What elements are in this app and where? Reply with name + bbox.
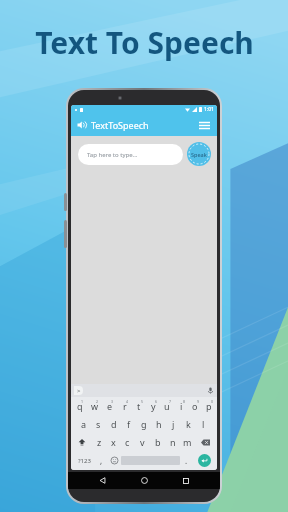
staticText: 2 <box>96 399 99 404</box>
staticText: a <box>81 418 87 430</box>
staticText: . <box>185 455 188 466</box>
button[interactable]: f <box>121 415 136 433</box>
staticText: o <box>192 400 198 412</box>
button[interactable]: j <box>166 415 181 433</box>
button[interactable]: Home <box>138 474 151 487</box>
staticText: y <box>151 400 156 412</box>
button[interactable]: Backspace <box>195 433 216 451</box>
button[interactable]: v <box>135 433 150 451</box>
button[interactable]: 2 <box>87 397 102 415</box>
button[interactable]: 4 <box>117 397 132 415</box>
staticText: 7 <box>169 399 172 404</box>
staticText: w <box>91 400 99 412</box>
staticText: 3 <box>111 399 114 404</box>
staticText: ?123 <box>78 457 91 465</box>
staticText: 0 <box>211 399 214 404</box>
staticText: k <box>186 418 191 430</box>
button[interactable]: . <box>180 451 193 470</box>
staticText: Text To Speech <box>35 22 254 63</box>
staticText: 1:01 <box>204 106 214 113</box>
button[interactable]: x <box>106 433 120 451</box>
button[interactable]: Emoji <box>108 451 121 470</box>
staticText: i <box>180 400 183 412</box>
button[interactable]: Back <box>96 474 109 487</box>
button[interactable]: k <box>181 415 196 433</box>
staticText: 5 <box>141 399 144 404</box>
staticText: d <box>111 418 117 430</box>
staticText: TextToSpeech <box>91 119 149 131</box>
button[interactable]: Expand suggestions <box>74 386 83 395</box>
staticText: 9 <box>197 399 200 404</box>
button[interactable]: 5 <box>132 397 146 415</box>
staticText: u <box>164 400 170 412</box>
other: Speaker <box>77 120 87 130</box>
staticText: t <box>137 400 141 412</box>
button[interactable]: 6 <box>146 397 160 415</box>
button[interactable]: Voice input <box>207 387 214 394</box>
button[interactable]: 8 <box>174 397 188 415</box>
button[interactable]: Menu <box>197 118 211 132</box>
staticText: n <box>170 436 176 448</box>
button[interactable]: , <box>95 451 108 470</box>
staticText: v <box>140 436 145 448</box>
staticText: b <box>155 436 161 448</box>
button[interactable]: g <box>136 415 151 433</box>
staticText: Tap here to type... <box>87 151 138 159</box>
button[interactable]: Shift <box>72 433 92 451</box>
button[interactable]: n <box>165 433 180 451</box>
button[interactable]: 1 <box>72 397 87 415</box>
button[interactable]: l <box>196 415 211 433</box>
button[interactable]: a <box>77 415 91 433</box>
staticText: c <box>125 436 130 448</box>
button[interactable]: 0 <box>202 397 216 415</box>
staticText: 8 <box>183 399 186 404</box>
button[interactable]: Enter <box>198 454 211 467</box>
staticText: l <box>202 418 205 430</box>
button[interactable]: b <box>150 433 165 451</box>
staticText: r <box>123 400 127 412</box>
staticText: > <box>77 387 81 395</box>
staticText: f <box>127 418 131 430</box>
button[interactable]: 3 <box>102 397 117 415</box>
button[interactable]: ?123 <box>73 451 95 470</box>
staticText: x <box>111 436 116 448</box>
staticText: p <box>206 400 212 412</box>
staticText: m <box>183 436 192 448</box>
button[interactable]: 7 <box>160 397 174 415</box>
button[interactable]: 9 <box>188 397 202 415</box>
staticText: , <box>100 455 103 466</box>
staticText: e <box>107 400 113 412</box>
staticText: 6 <box>155 399 158 404</box>
staticText: h <box>156 418 162 430</box>
button[interactable]: c <box>120 433 135 451</box>
staticText: Speak <box>191 151 207 158</box>
button[interactable]: Tap here to type... <box>78 144 183 165</box>
button[interactable]: h <box>151 415 166 433</box>
staticText: z <box>97 436 102 448</box>
button[interactable]: z <box>92 433 106 451</box>
button[interactable]: d <box>106 415 121 433</box>
staticText: s <box>96 418 101 430</box>
button[interactable]: s <box>91 415 106 433</box>
staticText: g <box>141 418 147 430</box>
staticText: 1 <box>81 399 84 404</box>
button[interactable]: Speak <box>187 142 211 166</box>
staticText: q <box>77 400 83 412</box>
button[interactable]: Recents <box>179 474 192 487</box>
staticText: j <box>172 418 175 430</box>
staticText: 4 <box>126 399 129 404</box>
button[interactable]: m <box>180 433 195 451</box>
